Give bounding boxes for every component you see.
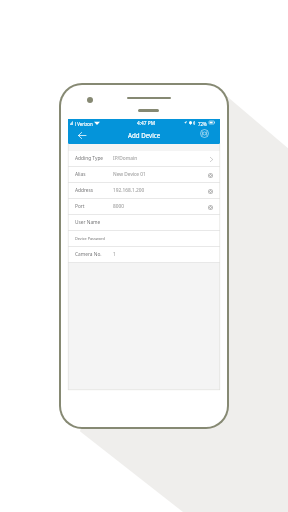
staticText: 1: [113, 251, 116, 258]
button[interactable]: User Name: [68, 215, 220, 230]
staticText: Port: [75, 203, 85, 210]
button[interactable]: Clear: [205, 186, 215, 196]
button[interactable]: Adding Type: [68, 151, 220, 166]
button[interactable]: Address: [68, 183, 220, 198]
button[interactable]: Port: [68, 199, 220, 214]
staticText: Camera No.: [75, 251, 102, 258]
staticText: User Name: [75, 219, 101, 226]
staticText: l Verizon: [75, 121, 93, 127]
button[interactable]: Camera No.: [68, 247, 220, 262]
staticText: Address: [75, 187, 94, 194]
staticText: Adding Type: [75, 155, 104, 162]
button[interactable]: Clear: [205, 202, 215, 212]
staticText: 192.168.1.200: [113, 187, 145, 194]
button[interactable]: Alias: [68, 167, 220, 182]
button[interactable]: Clear: [205, 170, 215, 180]
staticText: 4:47 PM: [137, 120, 156, 127]
staticText: IP/Domain: [113, 155, 138, 162]
button[interactable]: Back: [74, 127, 90, 143]
button[interactable]: Device Password: [68, 231, 220, 246]
button[interactable]: Choose adding type: [206, 154, 216, 164]
staticText: 8000: [113, 203, 124, 210]
staticText: Add Device: [128, 131, 161, 139]
staticText: New Device 01: [113, 171, 146, 178]
staticText: Alias: [75, 171, 86, 178]
button[interactable]: Save: [198, 127, 210, 139]
staticText: Device Password: [75, 236, 105, 241]
staticText: 72%: [198, 121, 207, 127]
